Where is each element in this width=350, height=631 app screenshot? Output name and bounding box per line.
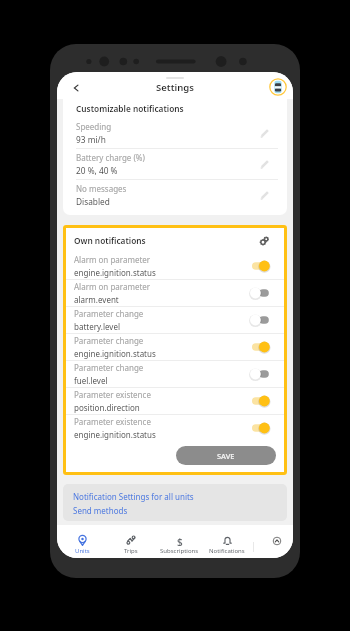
button[interactable]: Send methods — [73, 505, 128, 516]
button[interactable]: Alarm on parameter — [66, 280, 284, 307]
button[interactable]: Notifications — [204, 525, 250, 558]
button[interactable]: Vehicle profile — [269, 78, 287, 96]
staticText: Notifications — [209, 547, 245, 555]
staticText: engine.ignition.status — [74, 429, 156, 440]
button[interactable]: Parameter change — [66, 334, 284, 361]
button[interactable]: Parameter existence — [66, 388, 284, 415]
button[interactable]: Back — [66, 78, 86, 98]
button[interactable]: Alarm on parameter — [66, 253, 284, 280]
button[interactable]: Notification settings — [258, 235, 269, 246]
button[interactable]: Battery charge (%) — [63, 149, 287, 180]
button[interactable]: Units — [59, 525, 105, 558]
button[interactable]: SAVE — [176, 446, 276, 465]
staticText: Alarm on parameter — [74, 281, 151, 292]
staticText: Settings — [156, 81, 194, 94]
button[interactable]: Parameter change — [66, 361, 284, 388]
staticText: SAVE — [217, 451, 235, 461]
staticText: fuel.level — [74, 375, 108, 386]
staticText: position.direction — [74, 402, 140, 413]
staticText: Parameter existence — [74, 389, 151, 400]
button[interactable]: Notification Settings for all units — [73, 491, 194, 502]
staticText: Subscriptions — [160, 547, 199, 555]
button[interactable]: Parameter existence — [66, 415, 284, 441]
staticText: Parameter change — [74, 308, 144, 319]
staticText: 93 mi/h — [76, 134, 106, 145]
button[interactable]: Speeding — [63, 118, 287, 149]
staticText: Trips — [124, 547, 138, 555]
button[interactable]: Trips — [108, 525, 154, 558]
staticText: Parameter change — [74, 362, 144, 373]
staticText: $ — [177, 535, 183, 546]
staticText: engine.ignition.status — [74, 348, 156, 359]
staticText: battery.level — [74, 321, 120, 332]
staticText: Speeding — [76, 121, 112, 132]
staticText: Customizable notifications — [76, 103, 184, 114]
staticText: Disabled — [76, 196, 110, 207]
staticText: Units — [75, 547, 90, 555]
staticText: alarm.event — [74, 294, 119, 305]
staticText: 20 %, 40 % — [76, 165, 118, 176]
staticText: Alarm on parameter — [74, 254, 151, 265]
staticText: Parameter change — [74, 335, 144, 346]
button[interactable]: $ — [156, 525, 202, 558]
staticText: engine.ignition.status — [74, 267, 156, 278]
staticText: Battery charge (%) — [76, 152, 145, 163]
staticText: No messages — [76, 183, 127, 194]
button[interactable]: No messages — [63, 180, 287, 210]
button[interactable]: Expand — [260, 525, 293, 558]
staticText: Parameter existence — [74, 416, 151, 427]
button[interactable]: Parameter change — [66, 307, 284, 334]
staticText: Own notifications — [74, 235, 258, 246]
